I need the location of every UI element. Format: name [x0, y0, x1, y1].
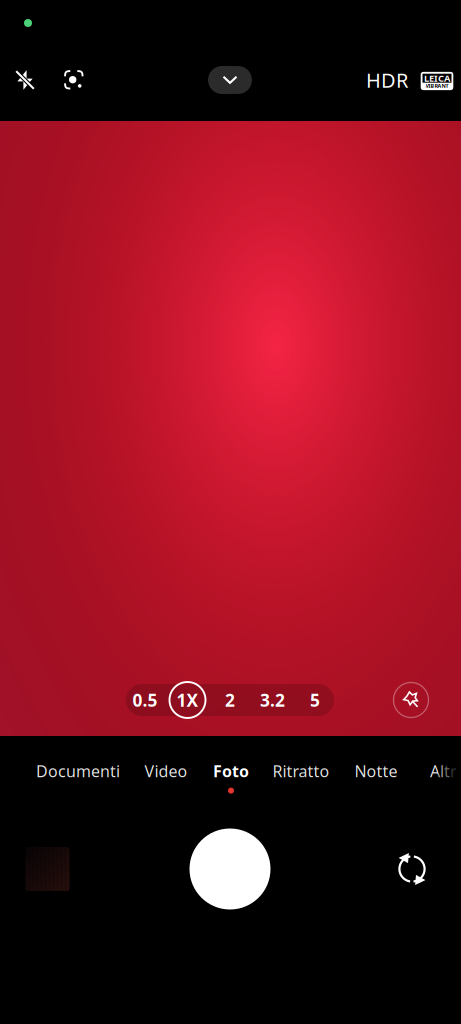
button[interactable]: 1X [166, 682, 209, 718]
button[interactable]: HDR [363, 63, 411, 97]
staticText: Notte [354, 760, 397, 782]
staticText: 1X [176, 688, 198, 711]
staticText: LEICA [424, 72, 450, 84]
staticText: 2 [225, 688, 235, 711]
staticText: Video [144, 760, 187, 782]
button[interactable]: Altro [424, 757, 461, 797]
button[interactable]: Switch camera [389, 846, 435, 892]
staticText: 3.2 [260, 688, 285, 711]
button[interactable]: Video [138, 757, 193, 797]
button[interactable]: AI scene detection [53, 59, 95, 101]
button[interactable]: Filters [393, 682, 428, 717]
button[interactable]: Flash off [5, 60, 45, 100]
button[interactable]: Shutter [189, 828, 270, 909]
staticText: HDR [366, 67, 408, 93]
button[interactable]: Notte [348, 757, 403, 797]
button[interactable]: Documenti [30, 757, 126, 797]
button[interactable]: Last photo [25, 847, 69, 891]
button[interactable]: Leica Vibrant look [421, 72, 453, 90]
button[interactable]: 3.2 [251, 682, 294, 718]
button[interactable]: Ritratto [266, 757, 335, 797]
staticText: VIBRANT [425, 82, 448, 89]
staticText: 0.5 [132, 688, 157, 711]
button[interactable]: 0.5 [124, 682, 166, 718]
button[interactable]: More settings [208, 66, 252, 94]
button[interactable]: Foto [207, 757, 255, 797]
staticText: Ritratto [272, 760, 329, 782]
button[interactable]: 2 [209, 682, 251, 718]
staticText: 5 [310, 688, 320, 711]
staticText: Foto [213, 760, 249, 782]
button[interactable]: 5 [294, 682, 336, 718]
staticText: Altro [430, 760, 461, 782]
staticText: Documenti [36, 760, 120, 782]
